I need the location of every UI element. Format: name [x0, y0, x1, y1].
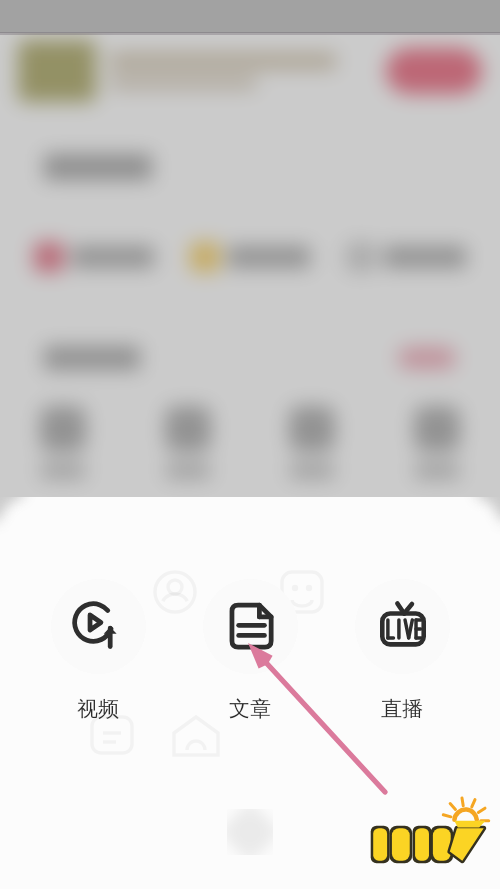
staticText: 文章	[229, 696, 271, 722]
button[interactable]: Live	[354, 579, 450, 722]
button[interactable]: Video	[50, 579, 146, 722]
button[interactable]: Article	[202, 579, 298, 722]
button[interactable]: Close	[227, 809, 273, 855]
staticText: 直播	[381, 696, 423, 722]
staticText: 视频	[77, 696, 119, 722]
